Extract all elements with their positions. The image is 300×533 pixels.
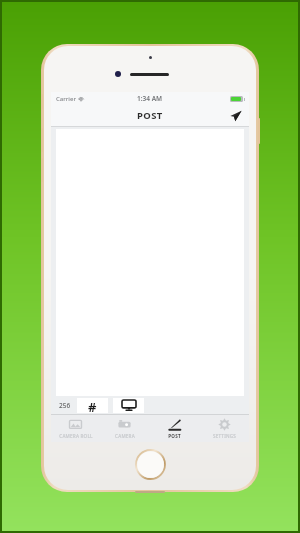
button[interactable]: SETTINGS (199, 415, 249, 442)
staticText: CAMERA (115, 433, 135, 439)
staticText: POST (137, 109, 163, 122)
button[interactable]: CAMERA ROLL (51, 415, 100, 442)
button[interactable]: Preview on screen (113, 398, 144, 413)
button[interactable]: POST (149, 415, 199, 442)
staticText: 256 (59, 401, 71, 410)
button[interactable]: Send post (225, 106, 245, 126)
staticText: # (88, 398, 97, 413)
staticText: Carrier (56, 95, 76, 103)
staticText: SETTINGS (213, 433, 236, 439)
button[interactable]: CAMERA (100, 415, 149, 442)
staticText: POST (168, 433, 181, 439)
button[interactable]: Hashtags (77, 398, 108, 413)
staticText: CAMERA ROLL (59, 433, 93, 439)
staticText: 1:34 AM (137, 94, 163, 103)
